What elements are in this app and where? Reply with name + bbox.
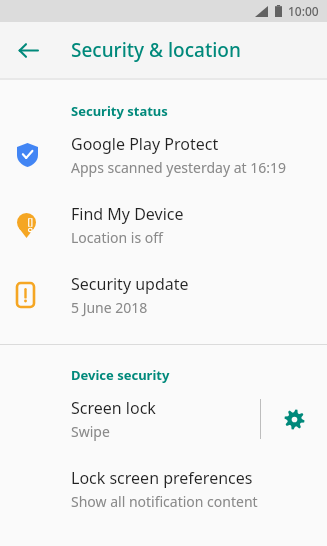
button[interactable]: Screen lock	[0, 384, 260, 454]
staticText: Location is off	[71, 228, 163, 247]
button[interactable]: Lock screen preferences	[0, 454, 327, 524]
staticText: Google Play Protect	[71, 133, 219, 155]
staticText: Show all notification content	[71, 492, 258, 511]
staticText: Device security	[71, 366, 170, 384]
staticText: Security status	[71, 102, 168, 120]
staticText: Lock screen preferences	[71, 467, 253, 489]
staticText: Security & location	[71, 37, 241, 63]
staticText: 10:00	[288, 3, 319, 19]
staticText: Find My Device	[71, 203, 184, 225]
button[interactable]: Screen lock settings	[261, 384, 327, 454]
staticText: Screen lock	[71, 397, 156, 419]
staticText: Security update	[71, 273, 189, 295]
staticText: 5 June 2018	[71, 298, 148, 317]
staticText: Apps scanned yesterday at 16:19	[71, 158, 287, 177]
button[interactable]: Back	[10, 32, 46, 68]
button[interactable]: Security update	[0, 260, 327, 330]
button[interactable]: Find My Device	[0, 190, 327, 260]
staticText: Swipe	[71, 422, 110, 441]
button[interactable]: Google Play Protect	[0, 120, 327, 190]
